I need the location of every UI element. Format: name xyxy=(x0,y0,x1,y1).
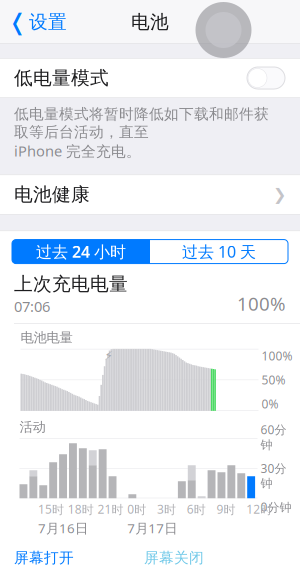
staticText: 电池电量 xyxy=(20,329,72,346)
staticText: 50% xyxy=(261,372,285,388)
staticText: 0时 xyxy=(127,501,146,517)
staticText: 3时 xyxy=(157,501,176,517)
button[interactable]: 低电量模式开关 xyxy=(246,64,286,92)
staticText: 100% xyxy=(261,348,292,364)
staticText: 7月17日 xyxy=(127,519,177,537)
button[interactable]: 过去 24 小时 xyxy=(12,240,150,264)
staticText: 7月16日 xyxy=(38,519,88,537)
staticText: 屏幕关闭 xyxy=(144,549,204,565)
staticText: 21时 xyxy=(97,501,123,517)
staticText: 低电量模式 xyxy=(14,66,109,89)
staticText: 过去 24 小时 xyxy=(36,241,126,262)
staticText: 设置 xyxy=(29,10,67,33)
staticText: 上次充电电量 xyxy=(14,273,128,295)
staticText: ❯ xyxy=(273,185,286,204)
staticText: 0% xyxy=(261,396,278,412)
staticText: ❬ xyxy=(8,9,27,35)
staticText: 电池 xyxy=(131,10,169,33)
staticText: 电池健康 xyxy=(14,183,90,206)
staticText: 0分钟 xyxy=(260,499,291,515)
staticText: 30分钟 xyxy=(260,460,286,491)
staticText: 60分钟 xyxy=(260,422,286,452)
button[interactable]: 电池健康 xyxy=(0,175,300,215)
button[interactable]: 过去 10 天 xyxy=(150,240,288,264)
staticText: 18时 xyxy=(68,501,94,517)
staticText: 100% xyxy=(237,291,286,316)
staticText: 6时 xyxy=(187,501,206,517)
staticText: 15时 xyxy=(38,501,64,517)
staticText: 屏幕打开 xyxy=(14,549,74,565)
staticText: ⚡︎ xyxy=(104,349,112,362)
staticText: 活动 xyxy=(19,419,45,435)
staticText: 9时 xyxy=(216,501,235,517)
button[interactable]: ❬ xyxy=(0,3,67,41)
staticText: 12时 xyxy=(246,501,272,517)
staticText: 07:06 xyxy=(14,296,50,316)
staticText: 过去 10 天 xyxy=(182,241,256,262)
staticText: 低电量模式将暂时降低如下载和邮件获取等后台活动，直至 iPhone 完全充电。 xyxy=(14,105,269,161)
